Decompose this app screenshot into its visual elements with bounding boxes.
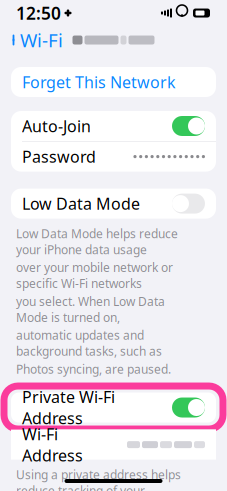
staticText: Low Data Mode [22,193,140,214]
button[interactable]: Wi-Fi [0,24,63,56]
staticText: Wi-Fi Address [22,423,83,466]
staticText: automatic updates and background tasks, … [16,327,162,359]
button[interactable]: Forget This Network [11,67,216,97]
staticText: Photos syncing, are paused. [16,361,171,377]
staticText: 12:50 [16,1,61,24]
button[interactable]: Toggle off [172,194,205,214]
staticText: Using a private address helps reduce tra… [16,467,181,491]
staticText: Password [22,146,96,167]
staticText: Forget This Network [22,71,176,93]
button[interactable]: Toggle on [172,397,205,417]
staticText: Wi-Fi [20,28,63,52]
button[interactable]: Private Wi-Fi Address [4,392,223,422]
button[interactable]: Toggle on [172,116,205,136]
staticText: Private Wi-Fi Address [22,386,115,429]
staticText: you select. When Low Data Mode is turned… [16,293,165,325]
staticText: over your mobile network or specific Wi-… [16,259,173,291]
staticText: Auto-Join [22,115,91,137]
staticText: Low Data Mode helps reduce your iPhone d… [16,226,178,257]
